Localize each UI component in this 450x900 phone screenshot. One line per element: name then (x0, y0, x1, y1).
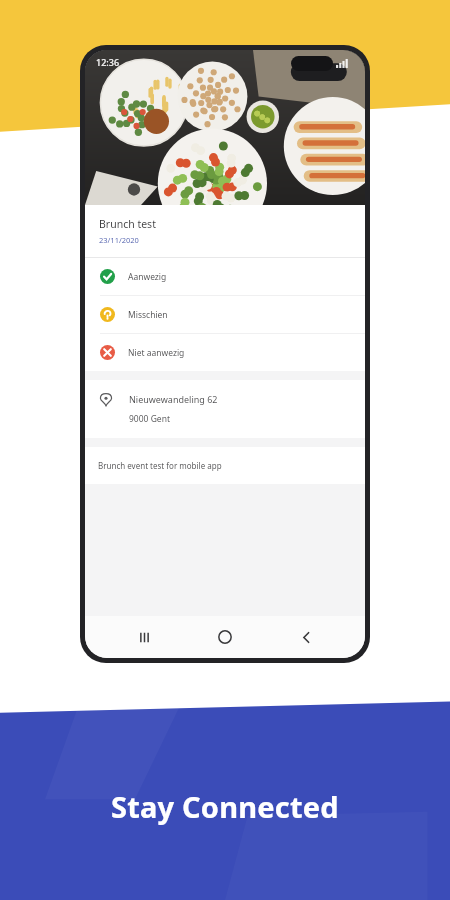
staticText: 23/11/2020 (99, 235, 139, 245)
button[interactable]: Home (203, 616, 247, 658)
button[interactable]: Misschien (85, 296, 365, 333)
button[interactable]: Aanwezig (85, 258, 365, 295)
staticText: 12:36 (96, 56, 120, 68)
staticText: Niet aanwezig (128, 347, 185, 359)
staticText: 9000 Gent (129, 413, 170, 425)
button[interactable]: Recents (122, 616, 166, 658)
button[interactable]: Nieuwewandeling 62 (85, 380, 365, 438)
staticText: Aanwezig (128, 271, 167, 283)
staticText: Misschien (128, 309, 168, 321)
staticText: Brunch event test for mobile app (98, 460, 222, 471)
button[interactable]: Niet aanwezig (85, 334, 365, 371)
staticText: Brunch test (99, 217, 156, 231)
staticText: Nieuwewandeling 62 (129, 393, 218, 405)
staticText: Stay Connected (111, 787, 339, 826)
button[interactable]: Back (284, 616, 328, 658)
